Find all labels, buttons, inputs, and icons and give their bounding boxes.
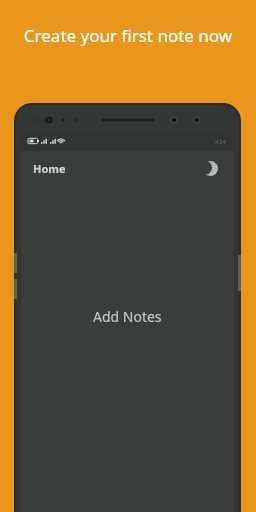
button[interactable]: Toggle dark mode xyxy=(198,156,222,180)
button[interactable]: Add Notes xyxy=(21,185,234,512)
staticText: Create your first note now xyxy=(20,24,236,47)
staticText: Home xyxy=(33,161,66,176)
staticText: 4:24 xyxy=(215,138,226,145)
staticText: Add Notes xyxy=(93,307,162,326)
